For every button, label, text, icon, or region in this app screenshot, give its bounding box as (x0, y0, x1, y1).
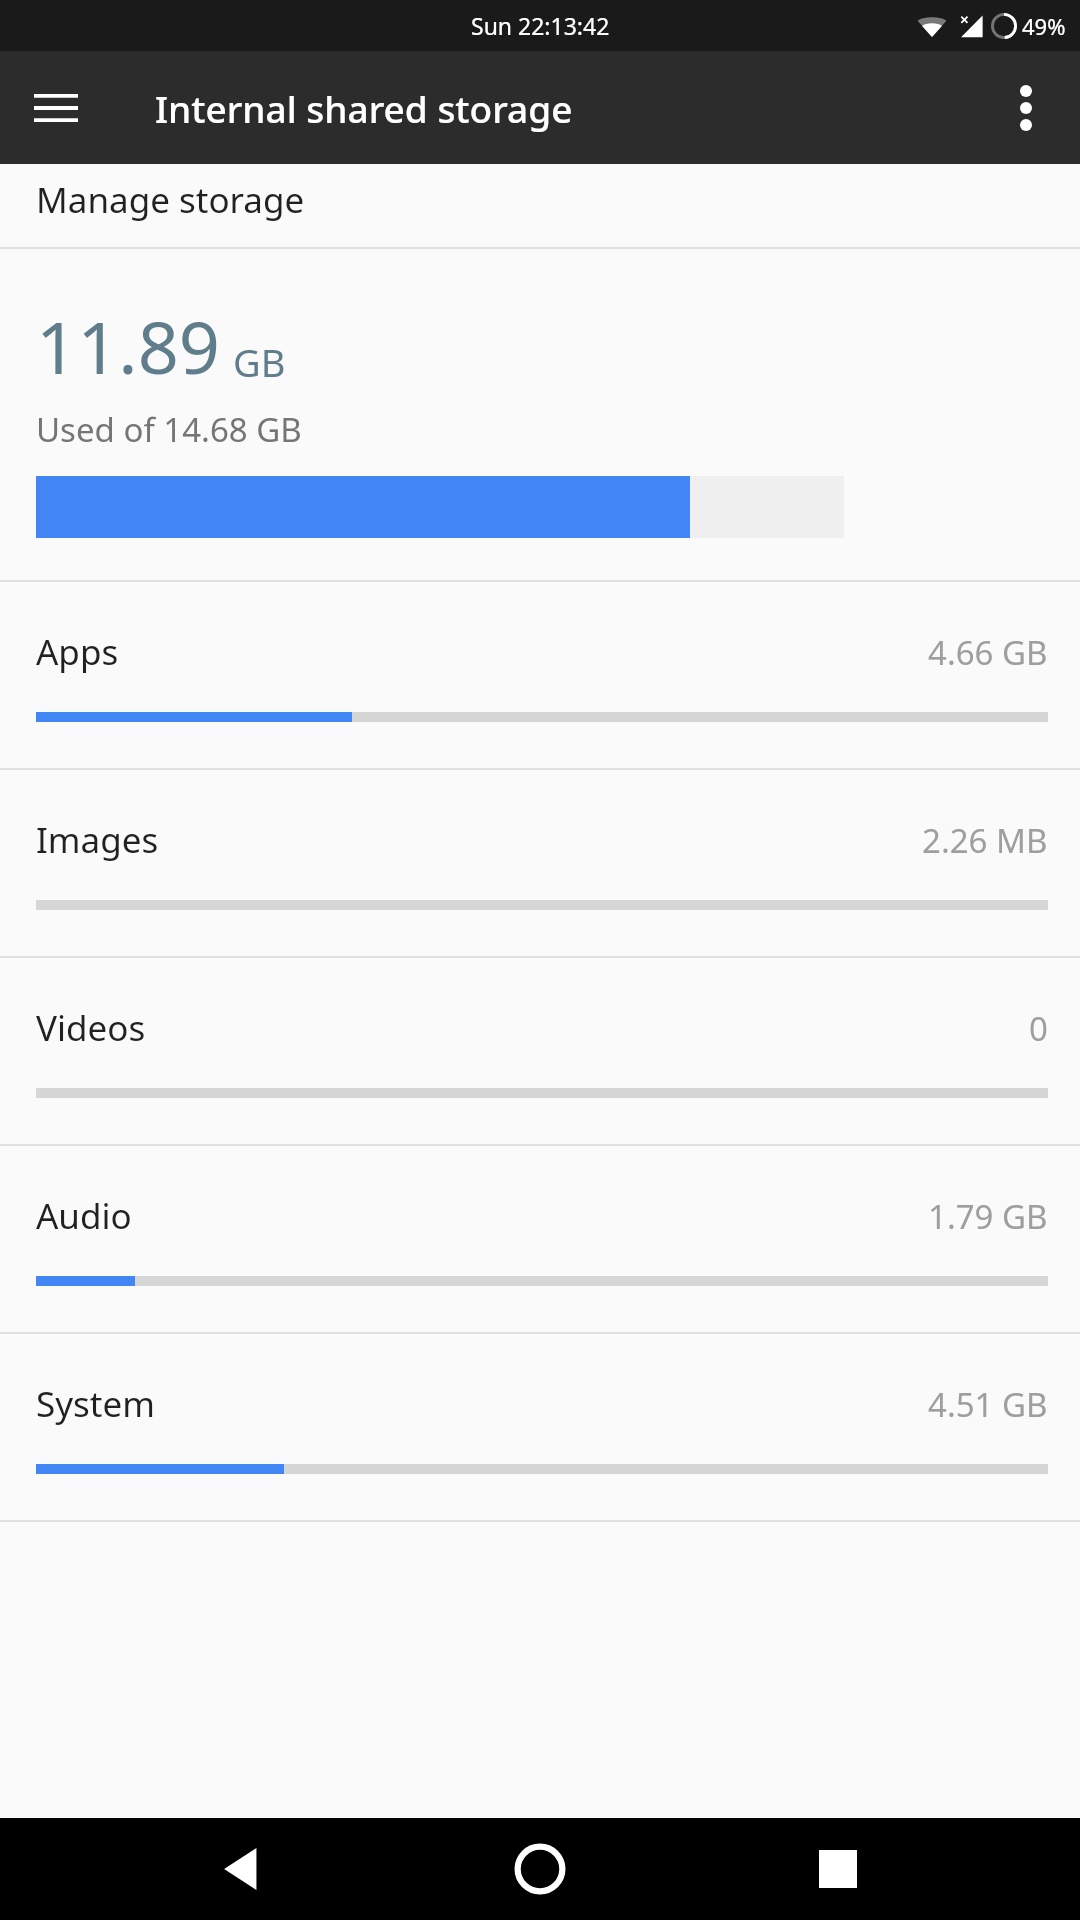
staticText: 2.26 MB (922, 818, 1048, 863)
button[interactable]: Back (188, 1818, 298, 1920)
button[interactable]: More options (990, 72, 1062, 144)
staticText: 11.89 (36, 297, 221, 395)
staticText: Sun 22:13:42 (471, 10, 610, 41)
staticText: 0 (1029, 1006, 1048, 1051)
staticText: 4.66 GB (928, 630, 1048, 675)
staticText: 4.51 GB (928, 1382, 1048, 1427)
staticText: GB (233, 336, 286, 388)
button[interactable]: System (0, 1334, 1080, 1520)
button[interactable]: Open navigation drawer (20, 72, 92, 144)
button[interactable]: Manage storage (0, 164, 1080, 247)
button[interactable]: Apps (0, 582, 1080, 768)
button[interactable]: Videos (0, 958, 1080, 1144)
button[interactable]: 11.89 (0, 249, 1080, 580)
staticText: Apps (36, 628, 119, 676)
button[interactable]: Audio (0, 1146, 1080, 1332)
staticText: Manage storage (36, 176, 305, 224)
staticText: 49% (1022, 11, 1066, 41)
staticText: Videos (36, 1004, 146, 1052)
staticText: 1.79 GB (928, 1194, 1048, 1239)
staticText: Images (36, 816, 159, 864)
staticText: System (36, 1380, 155, 1428)
button[interactable]: Recent apps (783, 1818, 893, 1920)
button[interactable]: Home (485, 1818, 595, 1920)
staticText: Used of 14.68 GB (36, 407, 302, 452)
staticText: Audio (36, 1192, 132, 1240)
button[interactable]: Images (0, 770, 1080, 956)
staticText: Internal shared storage (155, 83, 573, 133)
